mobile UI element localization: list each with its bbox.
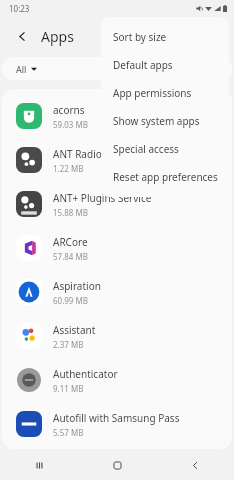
staticText: All bbox=[16, 63, 27, 75]
button[interactable]: Reset app preferences bbox=[101, 163, 229, 191]
staticText: Aspiration bbox=[53, 279, 101, 293]
staticText: Assistant bbox=[53, 323, 96, 337]
button[interactable]: ANT+ Plugins Service bbox=[2, 182, 232, 226]
button[interactable]: acorns bbox=[2, 94, 232, 138]
button[interactable]: Authenticator bbox=[2, 358, 232, 402]
staticText: Apps bbox=[41, 27, 74, 46]
staticText: Default apps bbox=[113, 58, 173, 72]
staticText: Autofill with Samsung Pass bbox=[53, 411, 180, 425]
button[interactable]: Default apps bbox=[101, 51, 229, 79]
staticText: App permissions bbox=[113, 86, 192, 100]
staticText: acorns bbox=[53, 103, 85, 117]
button[interactable]: Assistant bbox=[2, 314, 232, 358]
button[interactable]: ARCore bbox=[2, 226, 232, 270]
staticText: Show system apps bbox=[113, 114, 200, 128]
staticText: 9.11 MB bbox=[53, 383, 84, 394]
button[interactable]: All bbox=[16, 63, 37, 75]
staticText: 15.88 MB bbox=[53, 207, 88, 218]
staticText: 59.03 MB bbox=[53, 119, 88, 130]
button[interactable]: Back bbox=[156, 450, 234, 480]
staticText: ANT+ Plugins Service bbox=[53, 191, 152, 205]
staticText: 60.99 MB bbox=[53, 295, 88, 306]
button[interactable]: Show system apps bbox=[101, 107, 229, 135]
staticText: Special access bbox=[113, 142, 179, 156]
button[interactable]: Autofill with Samsung Pass bbox=[2, 402, 232, 446]
button[interactable]: Back bbox=[11, 25, 33, 47]
button[interactable]: Home bbox=[78, 450, 156, 480]
staticText: ANT Radio bbox=[53, 147, 102, 161]
staticText: 1.22 MB bbox=[53, 163, 84, 174]
button[interactable]: ANT Radio bbox=[2, 138, 232, 182]
staticText: 2.37 MB bbox=[53, 339, 84, 350]
staticText: 5.57 MB bbox=[53, 427, 84, 438]
button[interactable]: Sort by size bbox=[101, 23, 229, 51]
staticText: Sort by size bbox=[113, 30, 167, 44]
staticText: 10:23 bbox=[9, 3, 30, 14]
staticText: 57.84 MB bbox=[53, 251, 88, 262]
button[interactable]: Special access bbox=[101, 135, 229, 163]
staticText: Authenticator bbox=[53, 367, 118, 381]
button[interactable]: App permissions bbox=[101, 79, 229, 107]
button[interactable]: Recents bbox=[0, 450, 78, 480]
staticText: ARCore bbox=[53, 235, 88, 249]
staticText: Reset app preferences bbox=[113, 170, 218, 184]
button[interactable]: Aspiration bbox=[2, 270, 232, 314]
